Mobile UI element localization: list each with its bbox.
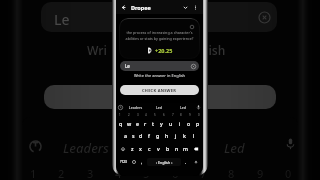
staticText: p: [196, 120, 200, 127]
button[interactable]: i: [175, 117, 184, 129]
staticText: Dropee: [131, 4, 151, 11]
staticText: 0: [285, 166, 292, 180]
staticText: g: [156, 132, 160, 139]
staticText: Le: [54, 10, 70, 29]
staticText: 3: [87, 166, 94, 180]
button[interactable]: u: [166, 117, 175, 129]
staticText: l: [193, 132, 195, 139]
button[interactable]: c: [145, 142, 154, 155]
staticText: u: [169, 120, 173, 127]
staticText: r: [144, 120, 147, 127]
button[interactable]: x: [136, 142, 145, 155]
button[interactable]: z: [128, 142, 136, 155]
button[interactable]: o: [184, 117, 193, 129]
staticText: ,: [141, 159, 143, 165]
button[interactable]: ,: [138, 155, 146, 169]
staticText: 4: [115, 166, 122, 180]
button[interactable]: Voice: [190, 155, 202, 169]
staticText: 3: [137, 113, 139, 117]
button[interactable]: w: [125, 117, 133, 129]
staticText: 9: [189, 113, 191, 117]
button[interactable]: Expand: [181, 3, 190, 12]
staticText: i: [179, 120, 181, 127]
staticText: d: [139, 132, 143, 139]
staticText: Le: [125, 63, 130, 69]
staticText: z: [131, 145, 134, 152]
staticText: lish: [205, 42, 226, 58]
staticText: 5: [143, 166, 150, 180]
staticText: y: [160, 120, 163, 127]
button[interactable]: k: [180, 129, 189, 142]
staticText: Leaders: [63, 139, 109, 157]
staticText: s: [132, 132, 135, 139]
button[interactable]: e: [133, 117, 141, 129]
staticText: 2: [128, 113, 130, 117]
staticText: 6: [163, 113, 165, 117]
staticText: e: [136, 120, 139, 127]
staticText: Led: [224, 139, 245, 157]
staticText: ‹ English ›: [156, 160, 173, 165]
button[interactable]: y: [157, 117, 166, 129]
button[interactable]: b: [163, 142, 172, 155]
button[interactable]: d: [137, 129, 145, 142]
staticText: f: [148, 132, 150, 139]
staticText: 8: [228, 166, 235, 180]
button[interactable]: q: [117, 117, 125, 129]
button[interactable]: t: [149, 117, 157, 129]
button[interactable]: m: [181, 142, 190, 155]
button[interactable]: Backspace: [190, 142, 202, 155]
staticText: j: [175, 132, 177, 139]
other: Voice input: [284, 138, 297, 151]
staticText: 9: [257, 166, 264, 180]
staticText: Write the answer in English: [116, 73, 203, 78]
button[interactable]: Led: [147, 105, 171, 110]
staticText: Wri: [87, 42, 107, 58]
staticText: ?123: [120, 160, 127, 164]
staticText: 7: [172, 113, 174, 117]
button[interactable]: Back: [119, 3, 128, 12]
button[interactable]: g: [153, 129, 162, 142]
button[interactable]: CHECK ANSWER: [120, 85, 199, 95]
staticText: the process of increasing a character's …: [120, 30, 199, 42]
button[interactable]: Emoji: [129, 155, 138, 169]
button[interactable]: ?123: [117, 155, 129, 169]
button[interactable]: ‹ English ›: [147, 158, 181, 166]
button[interactable]: Leaders: [124, 105, 147, 110]
staticText: 4: [145, 113, 147, 117]
button[interactable]: Voice input: [195, 104, 202, 111]
button[interactable]: v: [154, 142, 163, 155]
button[interactable]: f: [145, 129, 153, 142]
button[interactable]: a: [121, 129, 129, 142]
staticText: +20.25: [155, 47, 173, 54]
button[interactable]: More options: [191, 3, 200, 12]
staticText: CHECK ANSWER: [142, 88, 177, 93]
button[interactable]: Shift: [117, 142, 128, 155]
button[interactable]: l: [189, 129, 198, 142]
staticText: m: [183, 145, 188, 152]
button[interactable]: h: [162, 129, 171, 142]
staticText: c: [148, 145, 151, 152]
button[interactable]: s: [129, 129, 137, 142]
staticText: t: [152, 120, 154, 127]
button[interactable]: Clipboard: [117, 104, 124, 111]
button[interactable]: r: [141, 117, 149, 129]
other: Clipboard: [28, 139, 43, 154]
other: Info: [190, 25, 194, 29]
button[interactable]: j: [171, 129, 180, 142]
button[interactable]: Led: [171, 105, 195, 110]
button[interactable]: .: [182, 155, 190, 169]
staticText: k: [183, 132, 186, 139]
staticText: b: [166, 145, 170, 152]
staticText: 5: [154, 113, 156, 117]
staticText: o: [187, 120, 191, 127]
button[interactable]: p: [193, 117, 202, 129]
staticText: .: [185, 159, 187, 165]
staticText: v: [157, 145, 160, 152]
button[interactable]: n: [172, 142, 181, 155]
staticText: q: [119, 120, 123, 127]
staticText: 6: [172, 166, 179, 180]
button[interactable]: Le: [120, 61, 199, 71]
staticText: w: [127, 120, 132, 127]
staticText: a: [124, 132, 127, 139]
staticText: 1: [30, 166, 37, 180]
